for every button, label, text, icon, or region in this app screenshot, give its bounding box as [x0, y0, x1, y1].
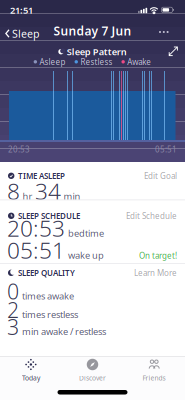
button[interactable]: [168, 46, 179, 57]
staticText: Today: [22, 373, 40, 382]
button[interactable]: Edit Goal: [144, 170, 177, 181]
staticText: times awake: [22, 290, 74, 302]
staticText: min: [63, 190, 80, 202]
staticText: bedtime: [68, 227, 104, 239]
staticText: 3: [7, 312, 19, 341]
staticText: Awake: [127, 56, 151, 67]
staticText: 2: [7, 295, 19, 324]
staticText: Friends: [143, 373, 166, 382]
staticText: 05:51: [155, 144, 177, 155]
button[interactable]: Sleep: [5, 26, 40, 41]
staticText: SLEEP QUALITY: [18, 267, 75, 278]
staticText: On target!: [139, 250, 177, 261]
staticText: TIME ASLEEP: [18, 170, 65, 181]
staticText: 20:53: [7, 213, 65, 243]
staticText: Edit Schedule: [126, 210, 177, 221]
staticText: Edit Goal: [144, 170, 177, 181]
button[interactable]: Edit Schedule: [126, 210, 177, 221]
staticText: hr: [22, 190, 32, 202]
staticText: SLEEP SCHEDULE: [18, 210, 80, 221]
button[interactable]: Friends: [123, 358, 185, 382]
staticText: Learn More: [134, 267, 177, 278]
staticText: 34: [35, 176, 61, 206]
button[interactable]: [159, 31, 169, 33]
button[interactable]: Discover: [62, 358, 123, 382]
staticText: 0: [7, 277, 19, 305]
staticText: Restless: [80, 56, 112, 67]
staticText: Sleep Pattern: [67, 45, 127, 58]
staticText: Asleep: [40, 56, 66, 67]
staticText: Sunday 7 Jun: [53, 23, 131, 39]
staticText: Sleep: [12, 26, 40, 41]
staticText: wake up: [68, 249, 104, 261]
staticText: 8: [7, 176, 20, 206]
button[interactable]: Learn More: [134, 267, 177, 278]
staticText: 05:51: [7, 235, 65, 265]
staticText: 21:51: [10, 4, 33, 16]
staticText: min awake / restless: [22, 325, 106, 337]
staticText: Discover: [79, 373, 106, 382]
staticText: times restless: [22, 308, 78, 320]
staticText: 20:53: [8, 144, 30, 155]
button[interactable]: Today: [0, 358, 62, 382]
